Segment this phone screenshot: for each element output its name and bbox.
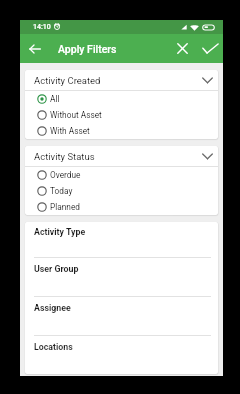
button[interactable]: Apply [197,34,223,63]
button[interactable]: User Group [25,257,218,296]
staticText: All [50,94,60,104]
button[interactable]: All [25,91,218,107]
button[interactable]: Locations [25,335,218,374]
staticText: User Group [34,264,79,274]
button[interactable]: With Asset [25,123,218,139]
staticText: Apply Filters [58,43,117,55]
staticText: With Asset [50,126,90,136]
button[interactable]: Without Asset [25,107,218,123]
button[interactable]: Clear filters [168,34,197,63]
button[interactable]: Overdue [25,167,218,183]
button[interactable]: Today [25,183,218,199]
staticText: Without Asset [50,110,102,120]
staticText: Planned [50,202,81,212]
button[interactable]: Planned [25,199,218,215]
button[interactable]: Assignee [25,296,218,335]
staticText: Activity Type [34,227,86,237]
staticText: Locations [34,342,73,352]
button[interactable]: Back [20,34,49,63]
staticText: Assignee [34,303,71,313]
staticText: Activity Created [34,75,101,86]
button[interactable]: Activity Created [25,70,218,90]
staticText: Activity Status [34,151,95,162]
button[interactable]: Activity Status [25,146,218,166]
staticText: 14:10 [33,23,51,31]
staticText: Overdue [50,170,81,180]
button[interactable]: Activity Type [25,222,218,257]
staticText: Today [50,186,73,196]
